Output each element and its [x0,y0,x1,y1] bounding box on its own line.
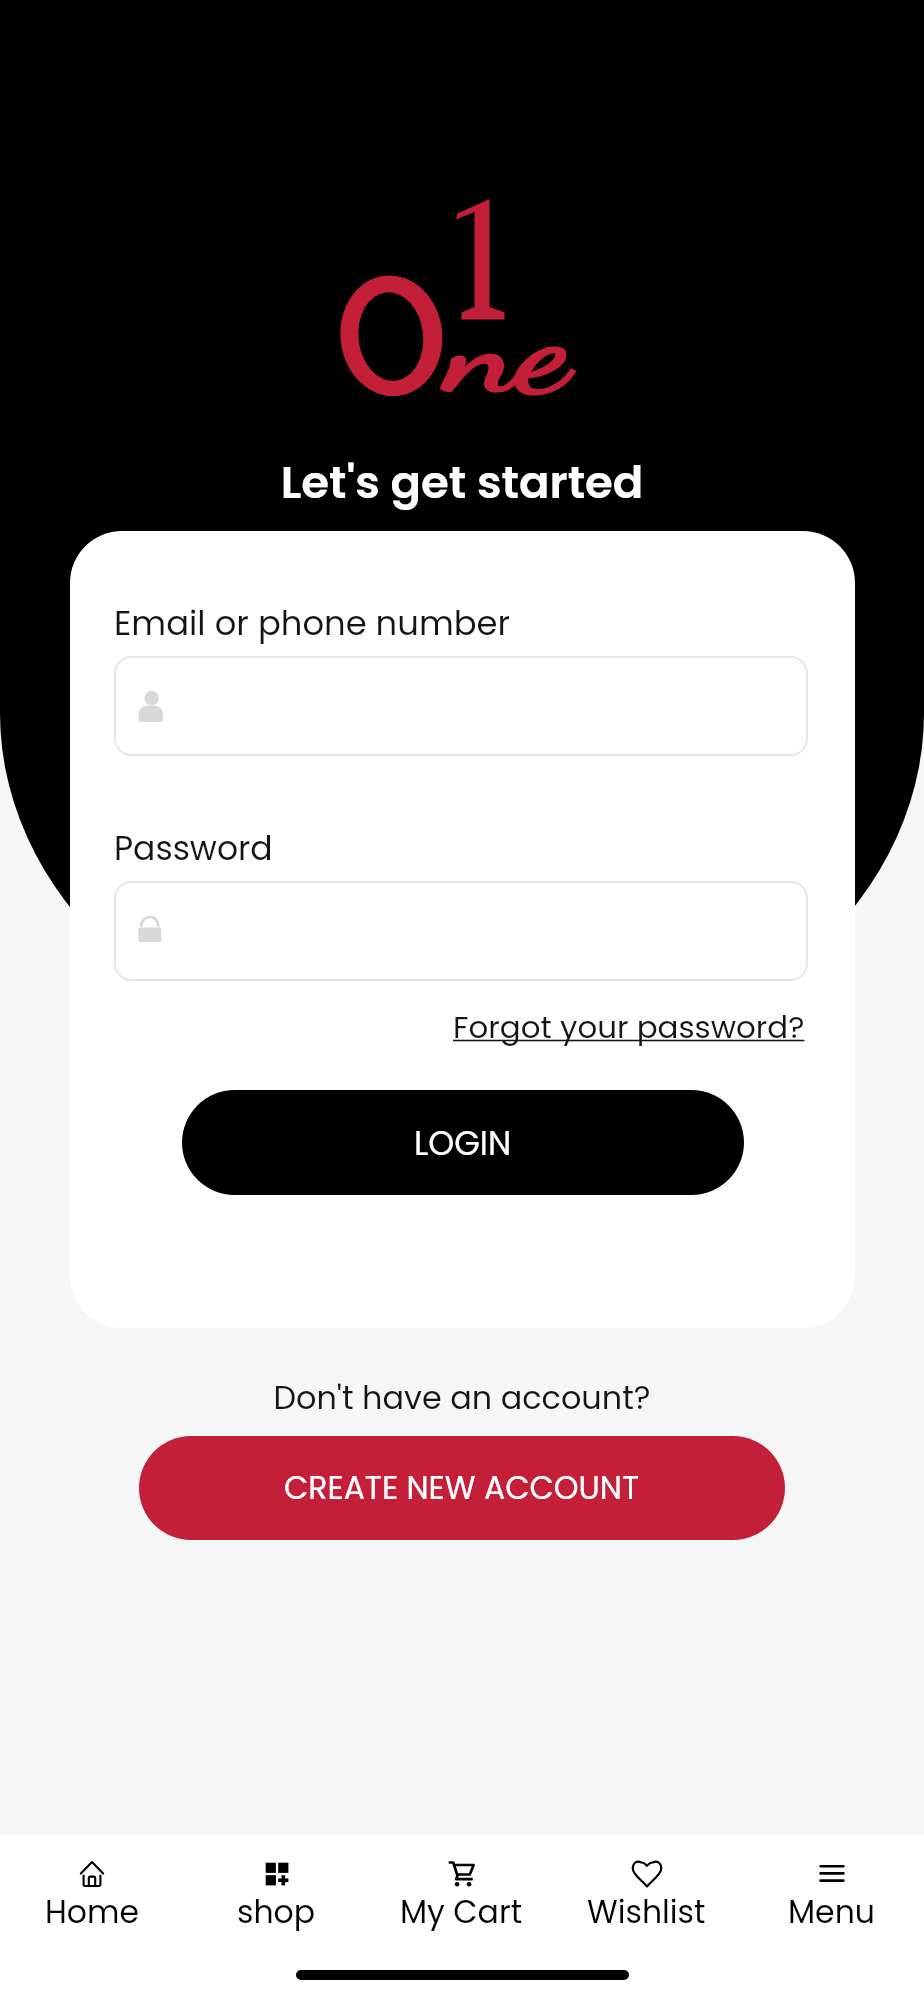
button[interactable]: Menu [739,1835,924,1934]
button[interactable]: CREATE NEW ACCOUNT [139,1436,785,1540]
staticText: Email or phone number [114,600,511,647]
staticText: shop [237,1890,316,1934]
staticText: LOGIN [414,1120,512,1166]
other: My Cart [446,1858,478,1890]
staticText: Home [45,1890,139,1934]
staticText: Don't have an account? [0,1376,924,1421]
button[interactable]: My Cart [369,1835,554,1934]
staticText: CREATE NEW ACCOUNT [284,1466,640,1510]
staticText: Menu [788,1890,875,1934]
staticText: Wishlist [587,1890,706,1934]
button[interactable]: Password [114,881,808,981]
button[interactable]: shop [184,1835,369,1934]
button[interactable]: Forgot your password? [453,1006,805,1049]
staticText: ne [448,285,569,421]
other: Home [76,1858,108,1890]
staticText: Let's get started [0,451,924,514]
button[interactable]: Home [0,1835,184,1934]
button[interactable]: Wishlist [554,1835,739,1934]
button[interactable]: LOGIN [182,1090,744,1195]
other: Menu [816,1858,848,1890]
staticText: Password [114,825,273,871]
other: Wishlist [631,1858,663,1890]
other: shop [261,1858,293,1890]
staticText: My Cart [400,1890,523,1934]
button[interactable]: Email or phone number [114,656,808,756]
